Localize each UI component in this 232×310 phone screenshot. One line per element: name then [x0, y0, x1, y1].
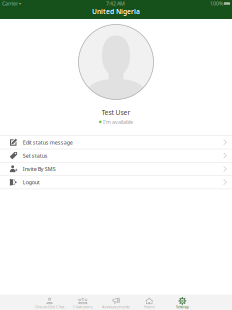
- staticText: I'm available: [103, 118, 133, 125]
- staticText: ▾: [18, 1, 21, 6]
- button[interactable]: Home: [133, 294, 166, 310]
- button[interactable]: Settings: [166, 294, 199, 310]
- staticText: Settings: [176, 304, 189, 309]
- staticText: Set status: [23, 152, 48, 159]
- button[interactable]: Invite By SMS: [0, 162, 232, 176]
- button[interactable]: Set status: [0, 149, 232, 162]
- button[interactable]: Logout: [0, 176, 232, 189]
- button[interactable]: Chatrooms: [66, 294, 99, 310]
- staticText: Edit status message: [23, 139, 73, 146]
- staticText: 7:42 AM: [106, 0, 125, 7]
- staticText: 100%: [210, 0, 223, 7]
- staticText: United Nigeria: [92, 7, 140, 16]
- staticText: Invite By SMS: [23, 165, 56, 172]
- staticText: Carrier: [2, 0, 18, 7]
- staticText: One-on-One Chat: [35, 304, 64, 309]
- button[interactable]: Announcements: [99, 294, 133, 310]
- staticText: Announcements: [102, 304, 130, 309]
- button[interactable]: One-on-One Chat: [33, 294, 66, 310]
- staticText: Chatrooms: [73, 304, 93, 309]
- staticText: Logout: [23, 179, 40, 186]
- staticText: Home: [144, 304, 155, 309]
- button[interactable]: Edit status message: [0, 136, 232, 149]
- staticText: Test User: [101, 108, 130, 117]
